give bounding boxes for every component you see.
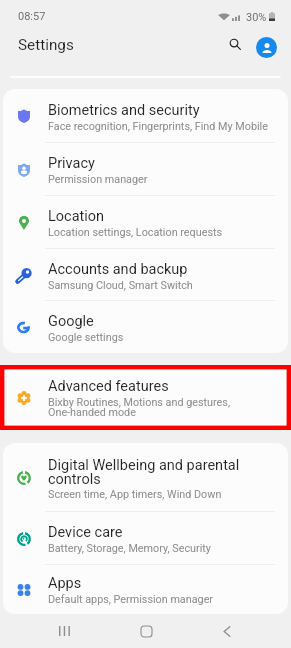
staticText: Google settings bbox=[48, 331, 124, 344]
staticText: Battery, Storage, Memory, Security bbox=[48, 542, 211, 555]
button[interactable]: Home bbox=[129, 614, 163, 648]
staticText: Default apps, Permission manager bbox=[48, 593, 214, 606]
staticText: 08:57 bbox=[18, 10, 46, 23]
staticText: Accounts and backup bbox=[48, 261, 188, 278]
button[interactable]: Privacy bbox=[3, 143, 288, 196]
staticText: Settings bbox=[18, 36, 74, 54]
button[interactable]: Recent apps bbox=[47, 614, 81, 648]
staticText: Bixby Routines, Motions and gestures, On… bbox=[48, 396, 231, 419]
button[interactable]: Google bbox=[3, 301, 288, 353]
staticText: Device care bbox=[48, 524, 123, 541]
button[interactable]: Location bbox=[3, 196, 288, 249]
staticText: Google bbox=[48, 313, 94, 330]
button[interactable]: Apps bbox=[3, 565, 288, 614]
staticText: Samsung Cloud, Smart Switch bbox=[48, 279, 193, 292]
staticText: Location bbox=[48, 208, 105, 225]
staticText: Face recognition, Fingerprints, Find My … bbox=[48, 120, 268, 133]
button[interactable]: Account bbox=[251, 32, 281, 62]
button[interactable]: Advanced features bbox=[3, 365, 288, 430]
staticText: Permission manager bbox=[48, 173, 148, 186]
staticText: Advanced features bbox=[48, 378, 169, 395]
staticText: Digital Wellbeing and parental controls bbox=[48, 457, 240, 487]
button[interactable]: Biometrics and security bbox=[3, 89, 288, 143]
button[interactable]: Device care bbox=[3, 512, 288, 565]
staticText: 30% bbox=[246, 11, 267, 24]
button[interactable]: Accounts and backup bbox=[3, 249, 288, 301]
staticText: Apps bbox=[48, 575, 82, 592]
staticText: Screen time, App timers, Wind Down bbox=[48, 488, 222, 501]
button[interactable]: Back bbox=[210, 614, 244, 648]
button[interactable]: Search bbox=[220, 29, 250, 59]
staticText: Privacy bbox=[48, 155, 95, 172]
staticText: Location settings, Location requests bbox=[48, 226, 223, 239]
staticText: Biometrics and security bbox=[48, 102, 200, 119]
button[interactable]: Digital Wellbeing and parental controls bbox=[3, 443, 288, 512]
